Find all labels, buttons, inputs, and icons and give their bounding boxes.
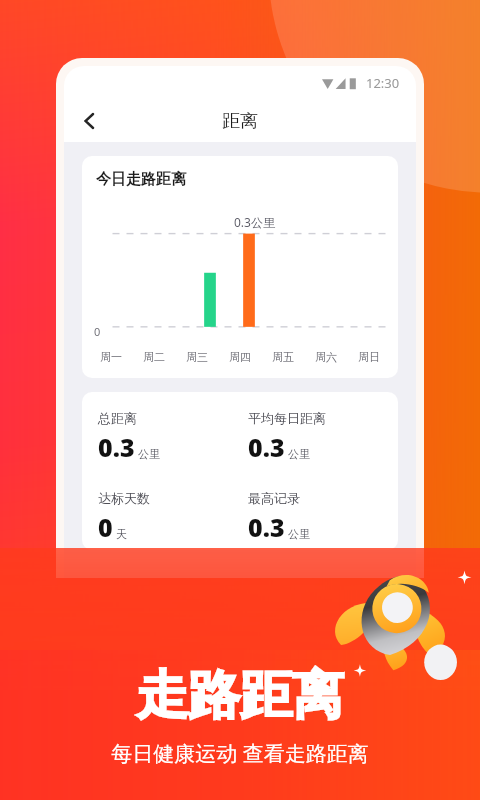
staticText: 距离 <box>222 110 258 133</box>
staticText: 总距离 <box>98 410 137 426</box>
staticText: 0.3 <box>98 430 135 464</box>
staticText: 公里 <box>138 447 160 461</box>
staticText: 最高记录 <box>248 490 300 506</box>
staticText: 平均每日距离 <box>248 410 326 426</box>
staticText: 0.3 <box>248 510 285 544</box>
staticText: 每日健康运动 查看走路距离 <box>111 739 369 768</box>
staticText: 12:30 <box>366 74 400 92</box>
button[interactable]: Back <box>72 103 108 139</box>
button[interactable]: 今日走路距离 <box>82 156 398 378</box>
staticText: 走路距离 <box>136 663 344 729</box>
staticText: 0 <box>94 324 101 339</box>
staticText: 周六 <box>315 350 337 364</box>
staticText: 达标天数 <box>98 490 150 506</box>
staticText: 0.3 <box>248 430 285 464</box>
staticText: 今日走路距离 <box>96 170 186 189</box>
staticText: 周三 <box>186 350 208 364</box>
staticText: 周一 <box>100 350 122 364</box>
staticText: 天 <box>116 527 127 541</box>
staticText: 周日 <box>358 350 380 364</box>
staticText: 周二 <box>143 350 165 364</box>
button[interactable]: 总距离 <box>82 392 398 550</box>
staticText: 0.3公里 <box>234 214 275 230</box>
staticText: 周四 <box>229 350 251 364</box>
staticText: 公里 <box>288 527 310 541</box>
staticText: 周五 <box>272 350 294 364</box>
staticText: 公里 <box>288 447 310 461</box>
staticText: 0 <box>98 510 113 544</box>
